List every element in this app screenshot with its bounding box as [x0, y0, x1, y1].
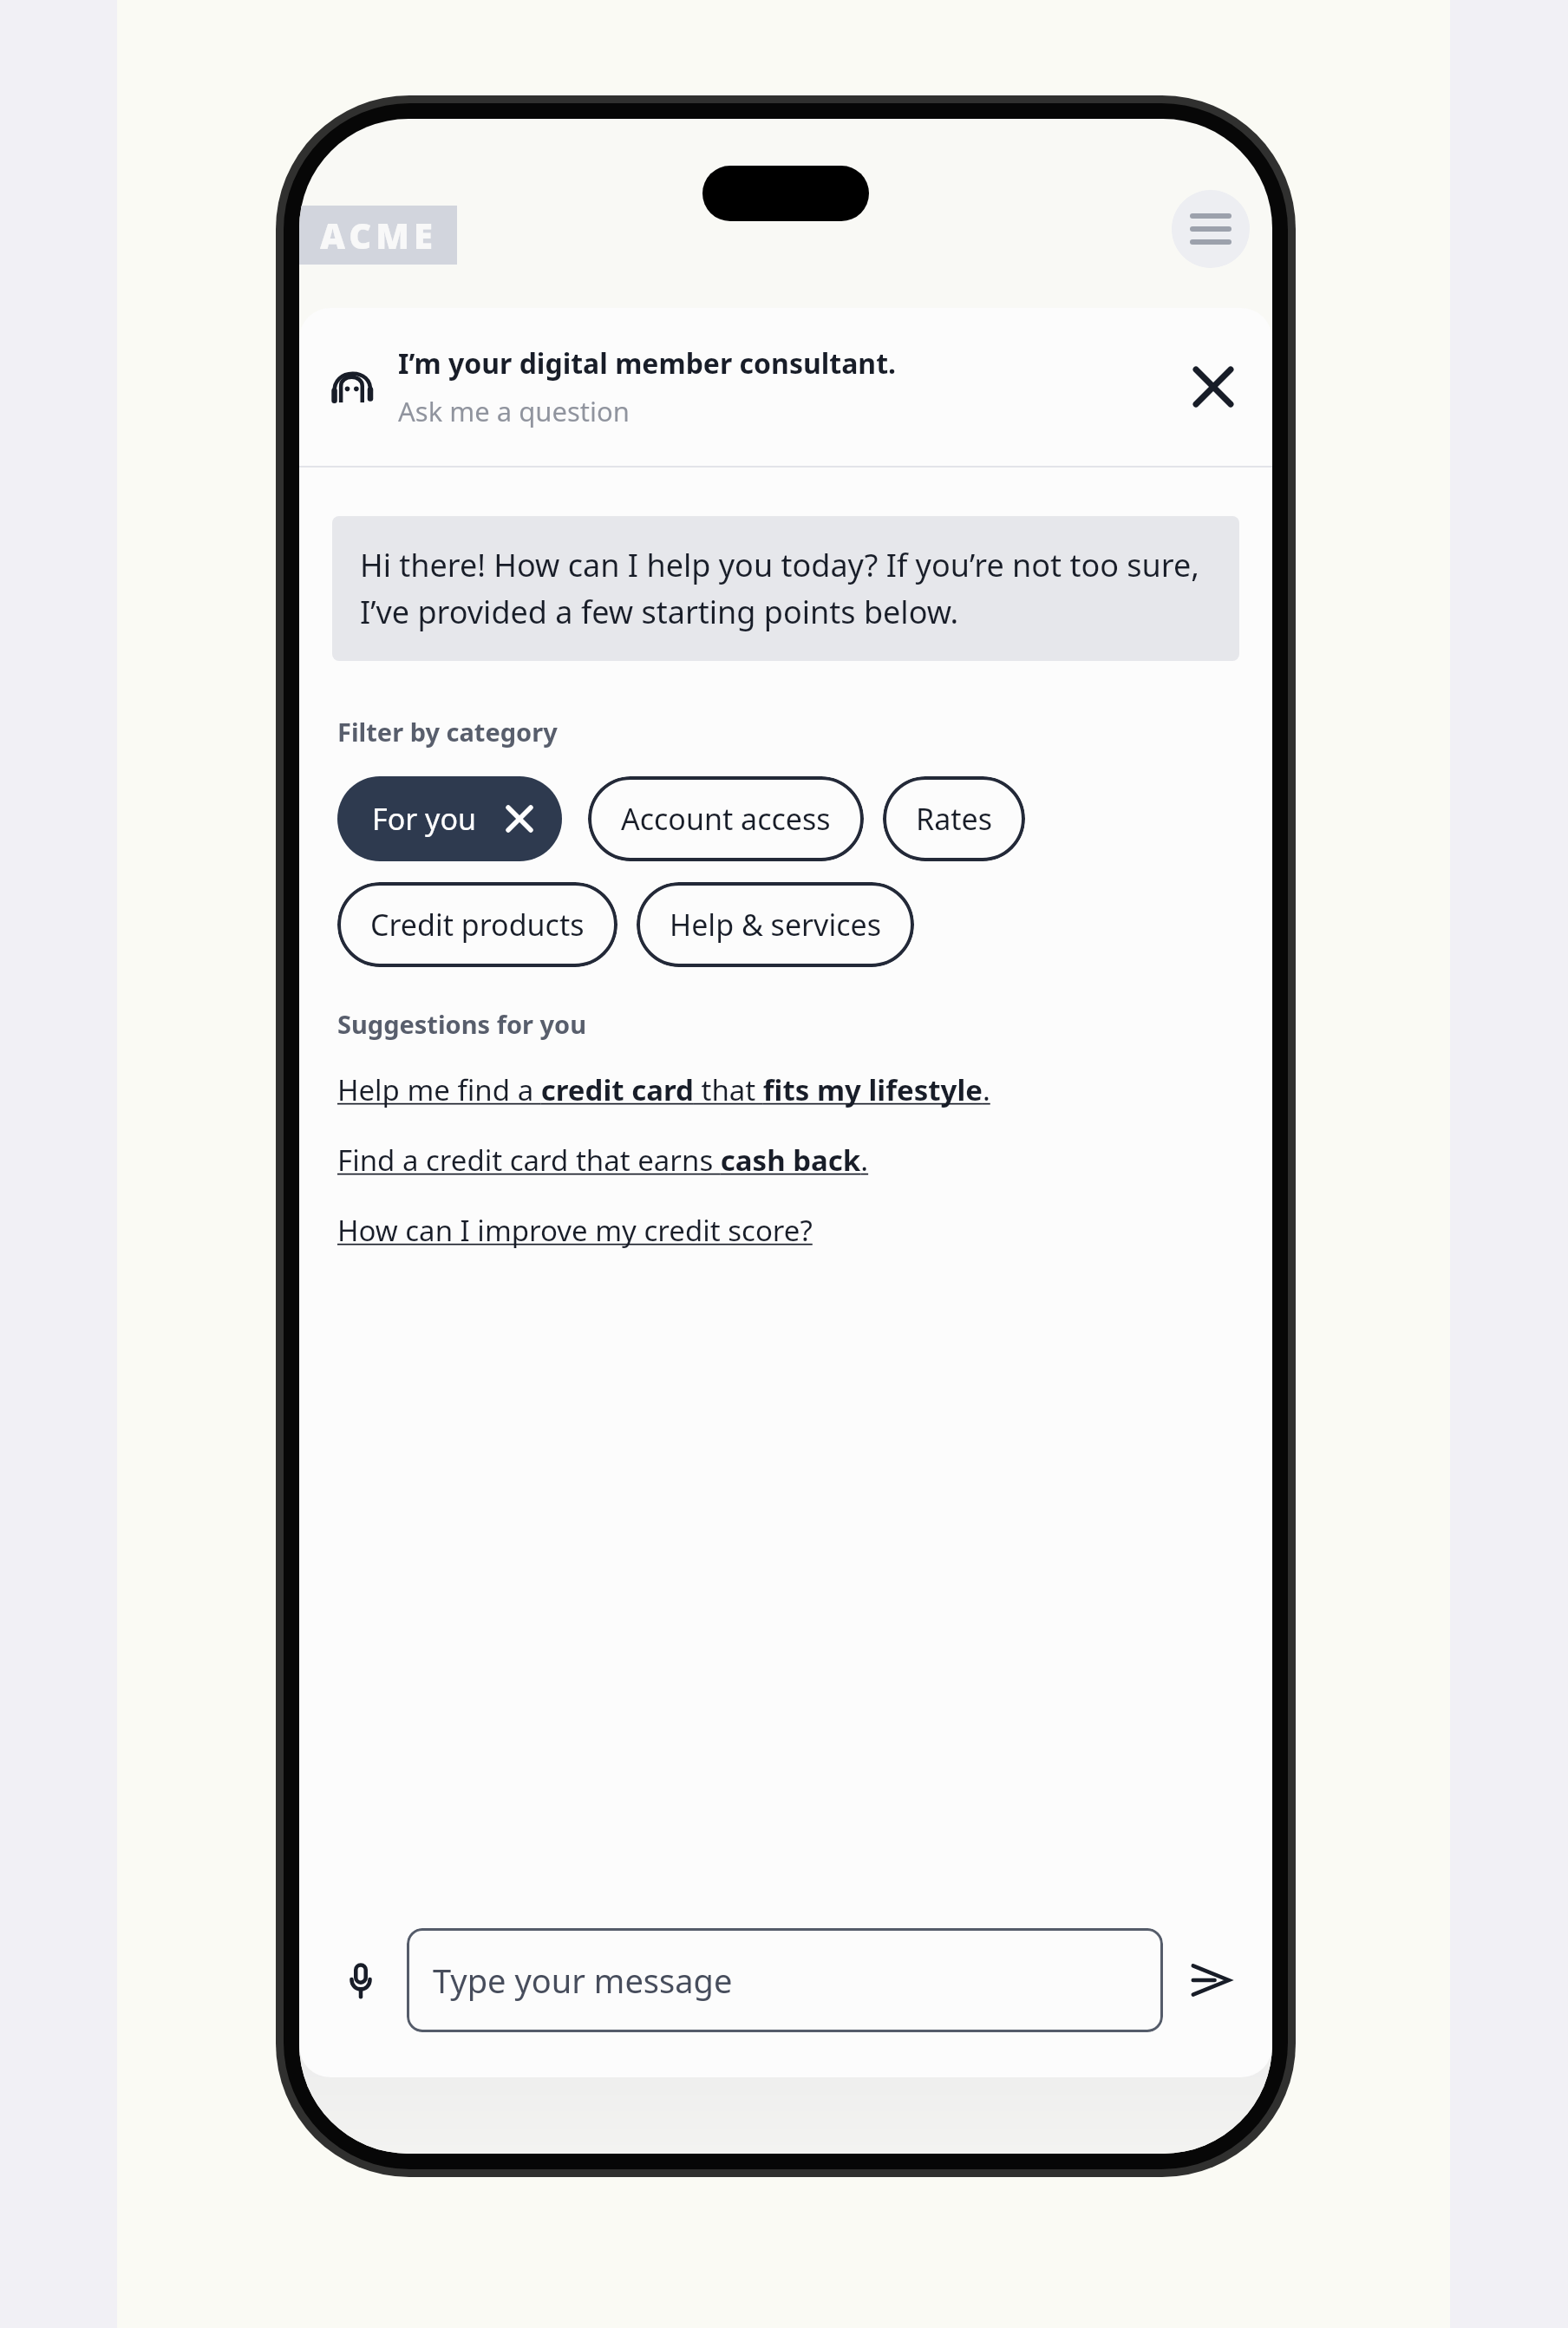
staticText: How can I improve my credit score?: [337, 1211, 813, 1250]
button[interactable]: How can I improve my credit score?: [337, 1211, 813, 1250]
button[interactable]: Help & services: [637, 882, 914, 967]
staticText: Filter by category: [337, 715, 558, 749]
button[interactable]: Voice input: [327, 1946, 395, 2014]
staticText: Credit products: [370, 905, 585, 945]
staticText: ACME: [320, 212, 437, 258]
button[interactable]: Type your message: [407, 1928, 1163, 2032]
staticText: Find a credit card that earns cash back.: [337, 1141, 869, 1180]
button[interactable]: Close: [1173, 347, 1253, 427]
button[interactable]: Send: [1177, 1946, 1245, 2014]
button[interactable]: Account access: [588, 776, 864, 861]
button[interactable]: Help me find a credit card that fits my …: [337, 1070, 990, 1109]
button[interactable]: Menu: [1172, 190, 1250, 268]
button[interactable]: Rates: [883, 776, 1025, 861]
staticText: Hi there! How can I help you today? If y…: [360, 544, 1212, 633]
staticText: Help me find a credit card that fits my …: [337, 1070, 990, 1109]
staticText: Account access: [621, 799, 831, 839]
staticText: Rates: [916, 799, 992, 839]
staticText: Type your message: [433, 1958, 733, 2003]
staticText: Ask me a question: [398, 393, 630, 429]
staticText: Suggestions for you: [337, 1007, 587, 1041]
staticText: Help & services: [670, 905, 881, 945]
button[interactable]: For you: [337, 776, 562, 861]
button[interactable]: Credit products: [337, 882, 617, 967]
button[interactable]: ACME home: [299, 206, 457, 265]
staticText: I’m your digital member consultant.: [398, 344, 897, 383]
staticText: For you: [372, 799, 477, 839]
button[interactable]: Find a credit card that earns cash back.: [337, 1141, 869, 1180]
